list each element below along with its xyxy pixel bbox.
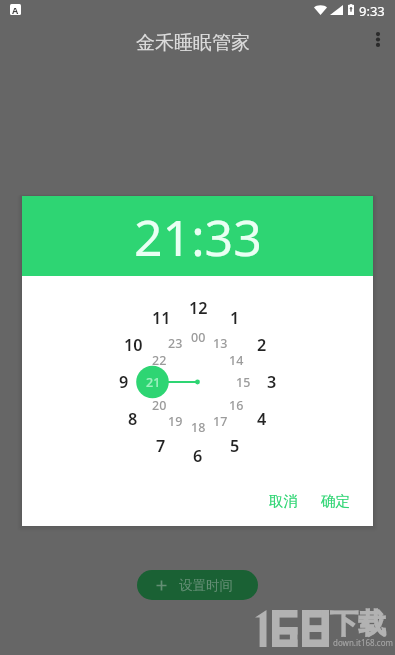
button[interactable]: 16 bbox=[222, 395, 250, 415]
button[interactable]: 2 bbox=[246, 333, 278, 357]
staticText: 确定 bbox=[321, 492, 350, 510]
button[interactable]: 9 bbox=[108, 370, 140, 394]
button[interactable]: 6 bbox=[182, 444, 214, 468]
button[interactable]: 17 bbox=[206, 411, 234, 431]
button[interactable]: 确定 bbox=[314, 483, 356, 519]
staticText: 9 bbox=[119, 371, 129, 393]
staticText: 14 bbox=[229, 352, 244, 369]
staticText: 20 bbox=[152, 397, 167, 414]
button[interactable]: 00 bbox=[184, 327, 212, 347]
staticText: 8 bbox=[128, 408, 138, 430]
staticText: 18 bbox=[191, 419, 206, 436]
staticText: 00 bbox=[191, 329, 206, 346]
staticText: 12 bbox=[189, 297, 208, 319]
staticText: 5 bbox=[230, 435, 240, 457]
button[interactable]: 取消 bbox=[262, 483, 304, 519]
staticText: 7 bbox=[156, 435, 166, 457]
button[interactable]: 22 bbox=[145, 350, 173, 370]
staticText: 6 bbox=[193, 445, 203, 467]
staticText: 11 bbox=[152, 307, 171, 329]
button[interactable]: 14 bbox=[222, 350, 250, 370]
button[interactable]: 11 bbox=[145, 306, 177, 330]
button[interactable]: 5 bbox=[219, 434, 251, 458]
button[interactable]: 21 bbox=[139, 372, 167, 392]
staticText: 17 bbox=[213, 413, 228, 430]
button[interactable]: More options bbox=[361, 17, 395, 61]
staticText: 取消 bbox=[269, 492, 298, 510]
staticText: 3 bbox=[267, 371, 277, 393]
button[interactable]: 18 bbox=[184, 417, 212, 437]
staticText: 下载 bbox=[330, 606, 386, 641]
button[interactable]: 3 bbox=[256, 370, 288, 394]
button[interactable]: 8 bbox=[117, 407, 149, 431]
button[interactable]: 13 bbox=[206, 333, 234, 353]
button[interactable]: 15 bbox=[229, 372, 257, 392]
button[interactable]: 1 bbox=[219, 306, 251, 330]
button[interactable]: Add bbox=[137, 570, 258, 600]
button[interactable]: 23 bbox=[161, 333, 189, 353]
staticText: 13 bbox=[213, 335, 228, 352]
staticText: 金禾睡眠管家 bbox=[136, 31, 250, 55]
staticText: 2 bbox=[257, 334, 267, 356]
staticText: A bbox=[12, 4, 19, 15]
staticText: 设置时间 bbox=[179, 577, 233, 594]
button[interactable]: 21:33 bbox=[22, 196, 373, 276]
staticText: 1 bbox=[230, 307, 240, 329]
button[interactable]: 10 bbox=[117, 333, 149, 357]
staticText: 23 bbox=[168, 335, 183, 352]
staticText: 19 bbox=[168, 413, 183, 430]
staticText: 4 bbox=[257, 408, 267, 430]
staticText: 15 bbox=[236, 374, 251, 391]
staticText: 21 bbox=[146, 374, 161, 391]
staticText: 21:33 bbox=[134, 203, 262, 271]
staticText: 10 bbox=[124, 334, 143, 356]
button[interactable]: 19 bbox=[161, 411, 189, 431]
staticText: down.it168.com bbox=[333, 637, 393, 648]
other: Add bbox=[156, 580, 167, 591]
button[interactable]: 12 bbox=[182, 296, 214, 320]
button[interactable]: 7 bbox=[145, 434, 177, 458]
button[interactable]: 4 bbox=[246, 407, 278, 431]
staticText: 9:33 bbox=[359, 2, 385, 20]
staticText: 22 bbox=[152, 352, 167, 369]
staticText: 16 bbox=[229, 397, 244, 414]
button[interactable]: 20 bbox=[145, 395, 173, 415]
